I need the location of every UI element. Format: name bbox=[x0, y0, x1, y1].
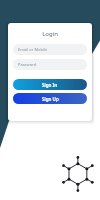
other: Molecule graphic bbox=[0, 0, 100, 200]
button[interactable]: Sign Up bbox=[13, 93, 87, 104]
staticText: Sign In bbox=[42, 82, 58, 88]
staticText: Password bbox=[18, 62, 37, 67]
staticText: Sign Up bbox=[42, 96, 59, 102]
button[interactable]: Password bbox=[13, 59, 87, 70]
button[interactable]: Email or Mobile bbox=[13, 44, 87, 55]
button[interactable]: Sign In bbox=[13, 79, 87, 90]
staticText: Login bbox=[8, 30, 92, 38]
staticText: Email or Mobile bbox=[18, 47, 48, 52]
